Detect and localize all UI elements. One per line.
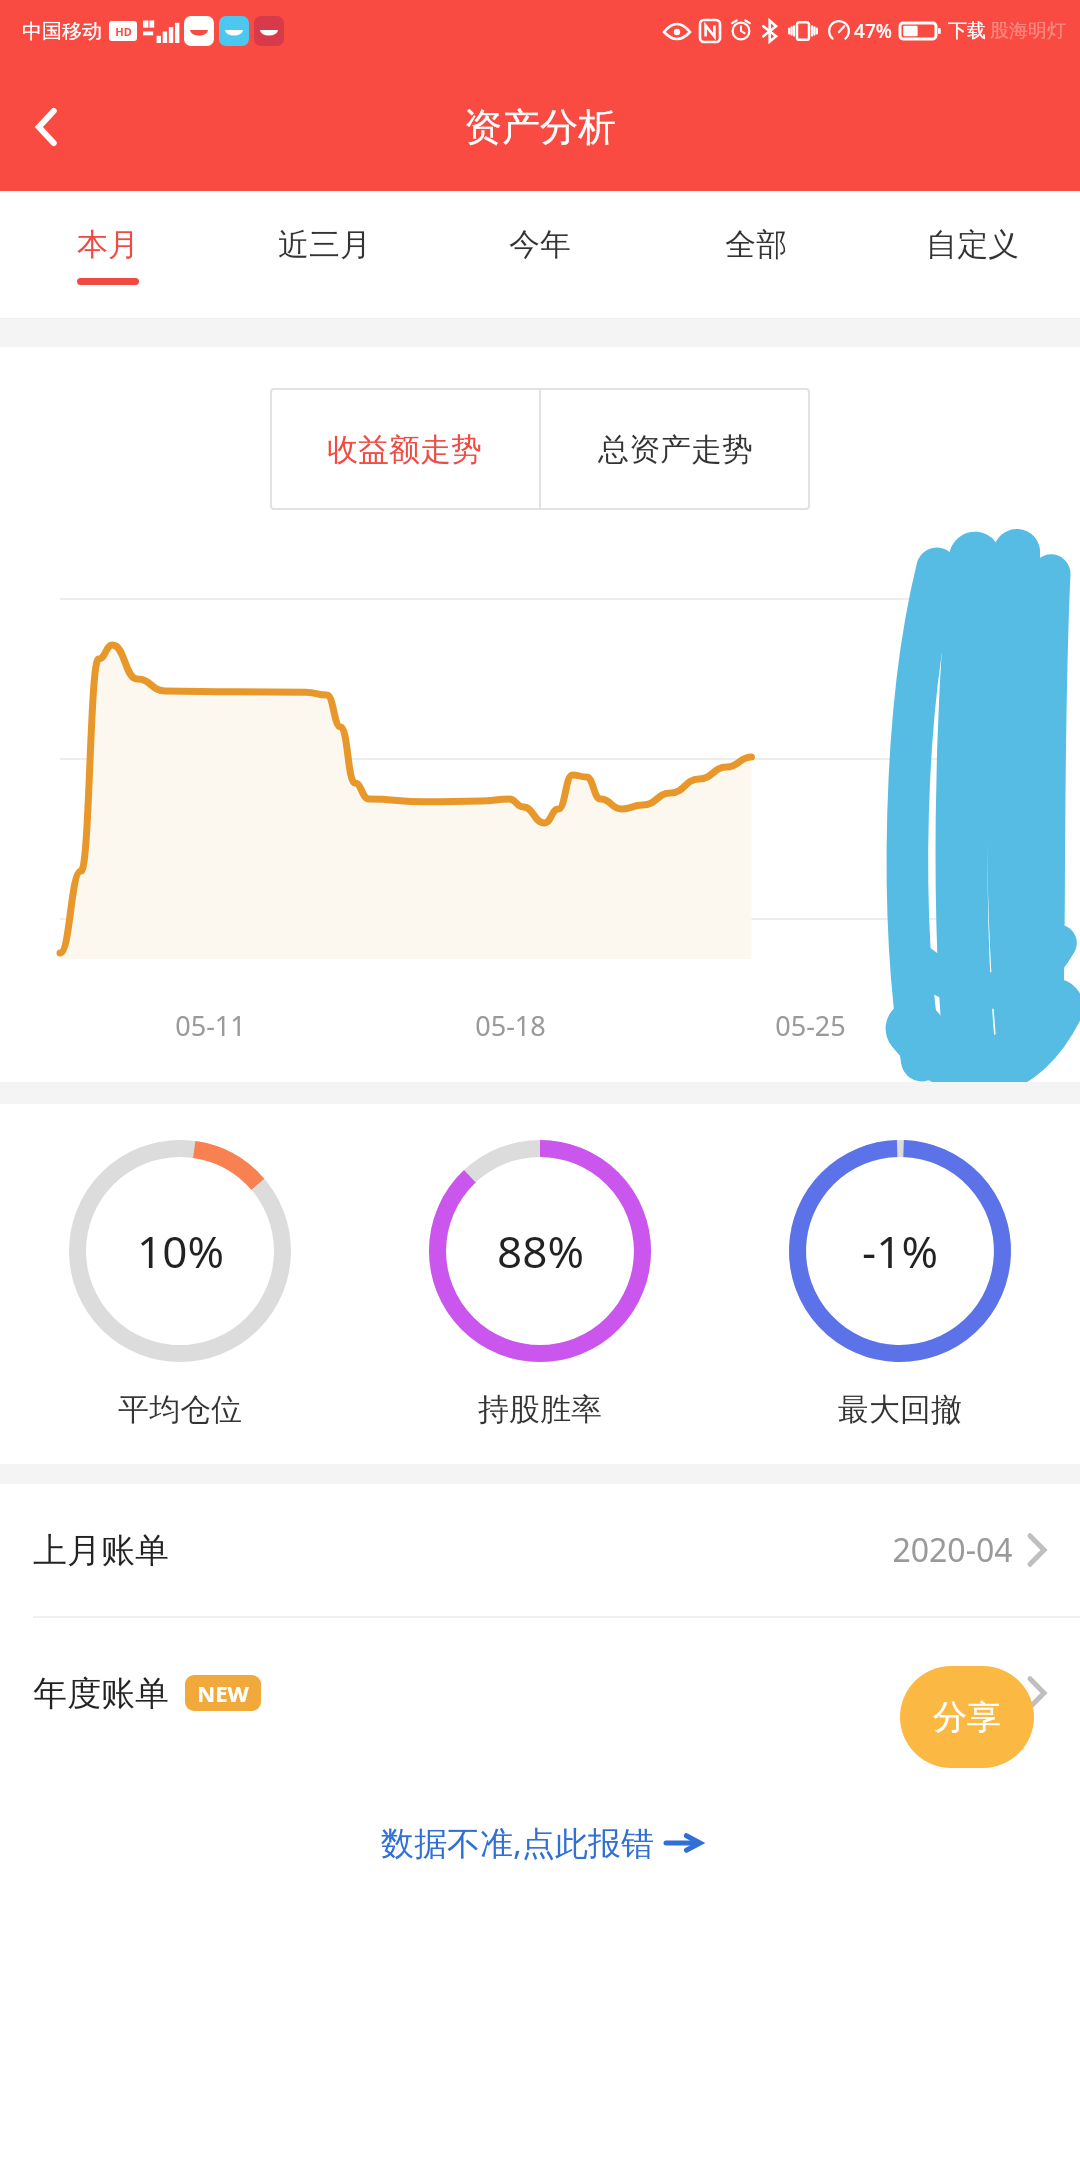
button[interactable]: 自定义	[864, 191, 1080, 319]
button[interactable]: 全部	[648, 191, 864, 319]
staticText: 10%	[137, 1221, 224, 1281]
staticText: 数据不准,点此报错	[381, 1820, 654, 1865]
staticText: 47%	[854, 18, 892, 44]
staticText: 近三月	[278, 225, 371, 264]
staticText: 资产分析	[464, 103, 616, 151]
button[interactable]: -1%	[720, 1140, 1080, 1429]
button[interactable]: 分享	[900, 1666, 1034, 1768]
button[interactable]: 总资产走势	[541, 388, 810, 510]
staticText: HD	[115, 24, 132, 39]
staticText: 总资产走势	[598, 430, 753, 469]
staticText: 05-18	[475, 1007, 546, 1044]
staticText: 下载	[948, 19, 986, 43]
button[interactable]: 年度账单	[0, 1618, 1080, 1768]
button[interactable]: 今年	[432, 191, 648, 319]
staticText: 全部	[725, 225, 787, 264]
staticText: 年度账单	[33, 1672, 169, 1715]
staticText: 股海明灯	[990, 19, 1066, 43]
staticText: 本月	[77, 225, 139, 264]
staticText: 最大回撤	[838, 1390, 962, 1429]
staticText: NEW	[197, 1678, 249, 1708]
button[interactable]: 上月账单	[0, 1484, 1080, 1616]
staticText: 88%	[497, 1221, 584, 1281]
button[interactable]: 10%	[0, 1140, 360, 1429]
staticText: 2020-04	[892, 1528, 1013, 1572]
staticText: 05-11	[175, 1007, 246, 1044]
staticText: 中国移动	[22, 19, 102, 44]
staticText: -1%	[862, 1221, 938, 1281]
button[interactable]: 数据不准,点此报错	[0, 1820, 1080, 1865]
staticText: 今年	[509, 225, 571, 264]
staticText: 收益额走势	[327, 430, 482, 469]
button[interactable]: 返回	[16, 96, 78, 158]
button[interactable]: 近三月	[216, 191, 432, 319]
button[interactable]: 88%	[360, 1140, 720, 1429]
staticText: 自定义	[926, 225, 1019, 264]
staticText: 05-25	[775, 1007, 846, 1044]
button[interactable]: 本月	[0, 191, 216, 319]
staticText: 上月账单	[33, 1529, 169, 1572]
staticText: 平均仓位	[118, 1390, 242, 1429]
button[interactable]: 收益额走势	[270, 388, 539, 510]
staticText: 持股胜率	[478, 1390, 602, 1429]
staticText: 分享	[933, 1696, 1001, 1739]
